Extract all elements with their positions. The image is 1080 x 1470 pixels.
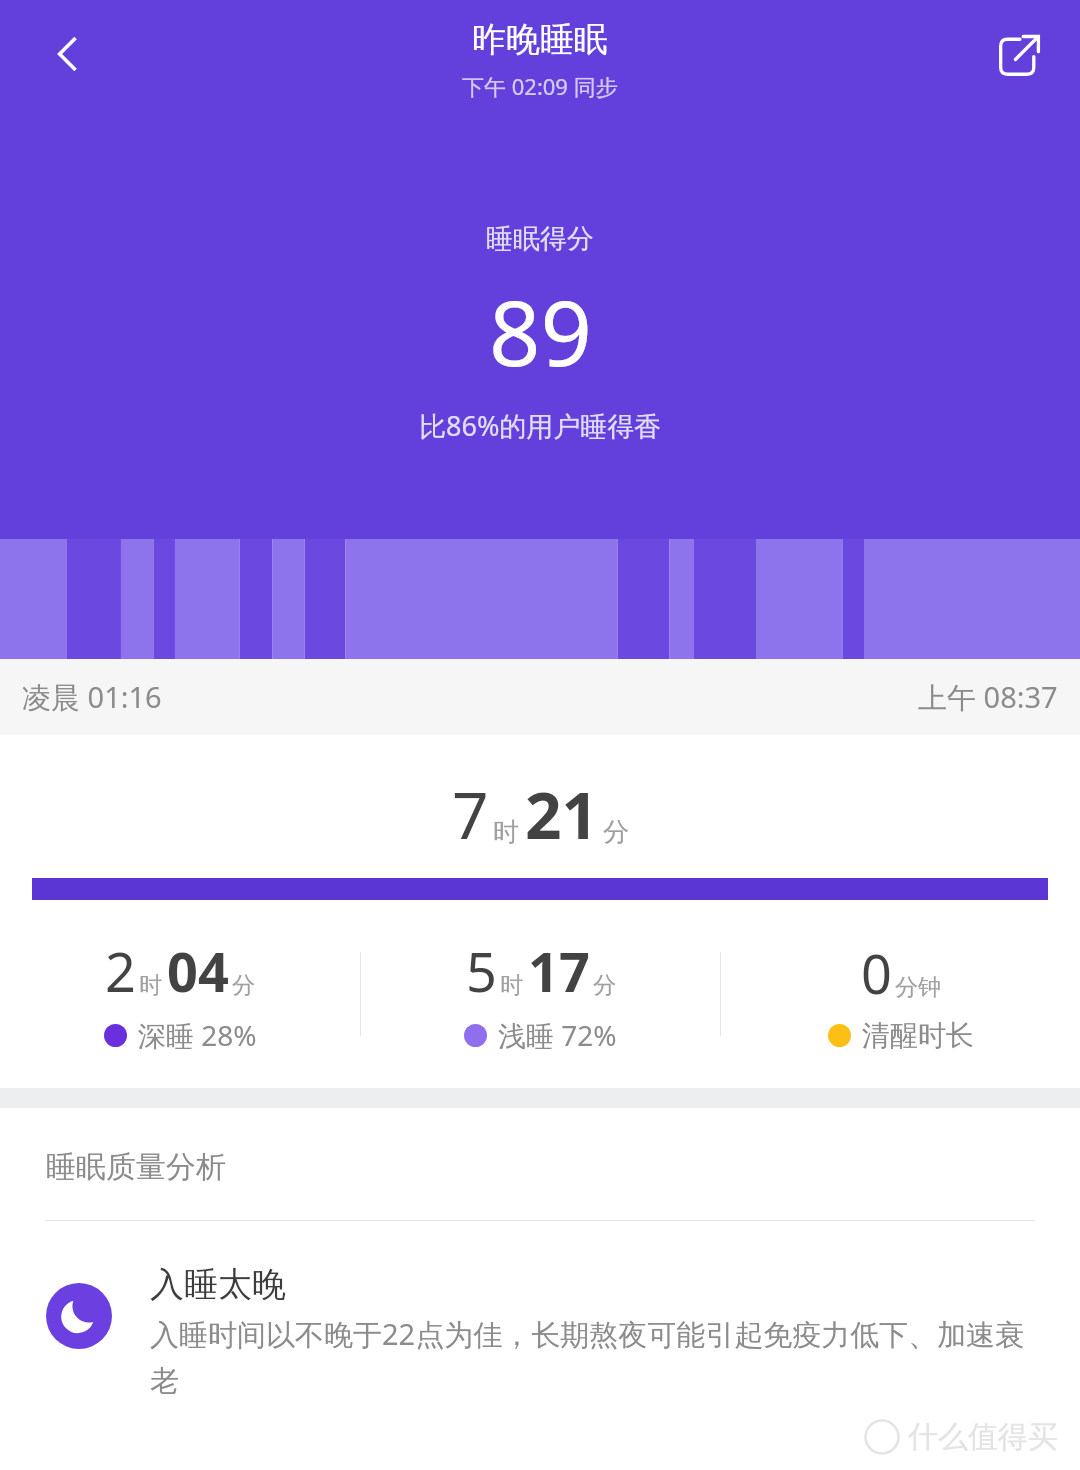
staticText: 时 xyxy=(493,816,519,849)
staticText: 0 xyxy=(861,936,892,1010)
staticText: 比86%的用户睡得香 xyxy=(419,407,662,444)
staticText: 入睡太晚 xyxy=(150,1263,286,1306)
staticText: 睡眠质量分析 xyxy=(46,1148,226,1186)
staticText: 时 xyxy=(500,971,523,1000)
button[interactable]: 0 xyxy=(721,936,1080,1053)
staticText: 分钟 xyxy=(895,973,941,1002)
staticText: 7 xyxy=(452,771,489,858)
staticText: 时 xyxy=(139,971,162,1000)
staticText: 89 xyxy=(489,270,592,393)
staticText: 分 xyxy=(232,971,255,1000)
staticText: 浅睡 72% xyxy=(498,1016,617,1054)
staticText: 睡眠得分 xyxy=(486,222,594,256)
staticText: 凌晨 01:16 xyxy=(22,677,162,717)
staticText: 上午 08:37 xyxy=(918,677,1058,717)
staticText: 17 xyxy=(528,934,590,1008)
staticText: 04 xyxy=(167,934,229,1008)
staticText: 什么值得买 xyxy=(908,1418,1058,1456)
button[interactable]: 2 xyxy=(0,934,360,1054)
staticText: 2 xyxy=(105,934,136,1008)
button[interactable]: 5 xyxy=(361,934,720,1054)
staticText: 下午 02:09 同步 xyxy=(462,71,618,101)
staticText: 深睡 28% xyxy=(138,1016,257,1054)
staticText: 清醒时长 xyxy=(862,1018,974,1053)
staticText: 21 xyxy=(525,771,599,858)
button[interactable]: 入睡太晚 xyxy=(0,1221,1080,1400)
staticText: 昨晚睡眠 xyxy=(472,18,608,61)
staticText: 分 xyxy=(593,971,616,1000)
staticText: 5 xyxy=(466,934,497,1008)
button[interactable]: Share xyxy=(980,14,1060,94)
staticText: 入睡时间以不晚于22点为佳，长期熬夜可能引起免疫力低下、加速衰老 xyxy=(150,1314,1036,1400)
staticText: 分 xyxy=(603,816,629,849)
button[interactable]: Back xyxy=(26,12,110,96)
